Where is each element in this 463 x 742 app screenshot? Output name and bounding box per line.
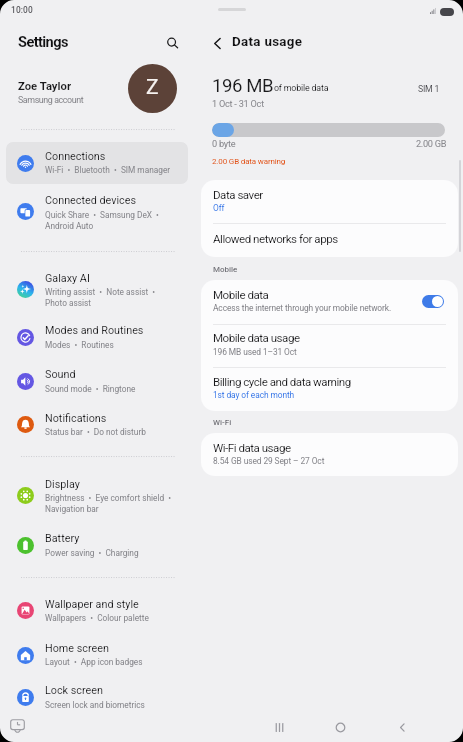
staticText: Access the internet through your mobile … (213, 303, 392, 313)
button[interactable]: Back (204, 30, 230, 56)
button[interactable]: Recent apps (264, 712, 294, 742)
staticText: of mobile data (274, 83, 329, 93)
staticText: 1 Oct - 31 Oct (212, 98, 264, 109)
staticText: Samsung account (18, 95, 84, 105)
staticText: Wallpapers • Colour palette (45, 612, 205, 623)
staticText: 0 byte (212, 138, 236, 149)
staticText: Allowed networks for apps (213, 232, 338, 246)
staticText: Wi-Fi data usage (213, 441, 291, 455)
staticText: Modes and Routines (45, 324, 144, 337)
staticText: Wallpaper and style (45, 598, 139, 611)
staticText: Data usage (232, 34, 303, 50)
staticText: Connections (45, 150, 106, 163)
button[interactable] (6, 471, 188, 524)
button[interactable] (6, 634, 188, 676)
staticText: Modes • Routines (45, 339, 205, 350)
staticText: Brightness • Eye comfort shield • Naviga… (45, 492, 205, 514)
staticText: 2.00 GB (416, 138, 447, 149)
staticText: Galaxy AI (45, 272, 90, 285)
button[interactable] (0, 62, 197, 114)
button[interactable]: Mobile data (422, 295, 444, 308)
staticText: Sound mode • Ringtone (45, 383, 205, 394)
button[interactable] (201, 433, 458, 476)
button[interactable] (6, 677, 188, 719)
staticText: Screen lock and biometrics (45, 699, 205, 710)
staticText: Status bar • Do not disturb (45, 426, 205, 437)
button[interactable] (6, 404, 188, 446)
staticText: Home screen (45, 642, 109, 655)
staticText: Mobile data (213, 288, 269, 302)
staticText: Display (45, 478, 80, 491)
staticText: Quick Share • Samsung DeX • Android Auto (45, 209, 205, 231)
staticText: Wi-Fi (213, 418, 232, 427)
staticText: 2.00 GB data warning (212, 157, 286, 166)
button[interactable] (201, 280, 458, 411)
button[interactable] (6, 265, 188, 318)
staticText: Off (213, 203, 225, 213)
staticText: Data saver (213, 188, 263, 202)
staticText: SIM 1 (418, 84, 440, 94)
staticText: Layout • App icon badges (45, 656, 205, 667)
button[interactable] (6, 187, 188, 240)
staticText: Power saving • Charging (45, 547, 205, 558)
staticText: Z (146, 75, 159, 100)
staticText: Mobile data usage (213, 331, 300, 345)
button[interactable] (6, 317, 188, 359)
button[interactable] (6, 361, 188, 403)
staticText: Zoe Taylor (18, 80, 72, 93)
staticText: 1st day of each month (213, 390, 295, 400)
staticText: Lock screen (45, 684, 103, 697)
staticText: Notifications (45, 412, 107, 425)
staticText: 196 MB used 1–31 Oct (213, 347, 297, 357)
staticText: Wi-Fi • Bluetooth • SIM manager (45, 164, 205, 175)
staticText: 8.54 GB used 29 Sept – 27 Oct (213, 456, 325, 466)
staticText: Battery (45, 532, 80, 545)
button[interactable]: Back (387, 712, 417, 742)
staticText: Mobile (213, 265, 238, 274)
staticText: Settings (18, 33, 68, 50)
staticText: 10:00 (11, 5, 33, 15)
button[interactable]: Home (325, 712, 355, 742)
button[interactable]: Screen time (9, 717, 26, 734)
button[interactable] (201, 180, 458, 257)
staticText: Billing cycle and data warning (213, 375, 351, 389)
button[interactable] (6, 525, 188, 567)
staticText: Connected devices (45, 194, 137, 207)
staticText: Sound (45, 368, 76, 381)
staticText: 196 MB (212, 75, 274, 97)
button[interactable] (6, 590, 188, 632)
button[interactable] (6, 142, 188, 184)
button[interactable]: Search (157, 28, 186, 57)
staticText: Writing assist • Note assist • Photo ass… (45, 286, 205, 308)
